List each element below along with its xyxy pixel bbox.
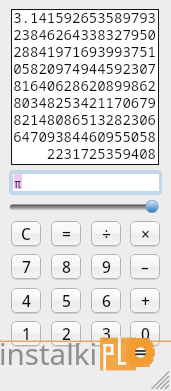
button[interactable]: × (130, 221, 160, 246)
staticText: 2231725359408 (13, 144, 156, 163)
staticText: 82148086513282306 (13, 110, 156, 129)
button[interactable]: ÷ (91, 221, 121, 246)
staticText: ÷ (102, 223, 111, 244)
button[interactable]: 5 (51, 288, 81, 313)
staticText: 80348253421170679 (13, 93, 156, 112)
button[interactable]: 1 (11, 321, 41, 346)
staticText: 3.141592653589793 (13, 8, 156, 27)
staticText: = (62, 223, 71, 244)
staticText: 1 (22, 323, 31, 344)
staticText: π (14, 175, 22, 191)
staticText: 5 (62, 290, 71, 311)
staticText: × (141, 223, 150, 244)
button[interactable]: 7 (11, 254, 41, 279)
staticText: instalki (0, 333, 98, 373)
staticText: 3 (102, 323, 111, 344)
button[interactable]: 8 (51, 254, 81, 279)
button[interactable]: = (51, 221, 81, 246)
staticText: 23846264338327950 (13, 25, 156, 44)
staticText: 7 (22, 256, 31, 277)
staticText: – (141, 256, 149, 277)
button[interactable]: 0 (130, 321, 160, 346)
staticText: C (21, 223, 31, 244)
staticText: 4 (22, 290, 31, 311)
staticText: + (141, 290, 150, 311)
button[interactable]: + (130, 288, 160, 313)
staticText: 6 (102, 290, 111, 311)
button[interactable]: Precision slider (0, 198, 171, 218)
staticText: 28841971693993751 (13, 42, 156, 61)
button[interactable]: π (13, 174, 159, 191)
button[interactable]: C (11, 221, 41, 246)
button[interactable]: – (130, 254, 160, 279)
button[interactable]: 3 (91, 321, 121, 346)
staticText: 9 (102, 256, 111, 277)
staticText: 0 (141, 323, 150, 344)
staticText: 64709384460955058 (13, 127, 156, 146)
button[interactable]: 6 (91, 288, 121, 313)
button[interactable]: 4 (11, 288, 41, 313)
staticText: 05820974944592307 (13, 59, 156, 78)
staticText: 8 (62, 256, 71, 277)
button[interactable]: 9 (91, 254, 121, 279)
staticText: 81640628620899862 (13, 76, 156, 95)
button[interactable]: 2 (51, 321, 81, 346)
staticText: 2 (62, 323, 71, 344)
